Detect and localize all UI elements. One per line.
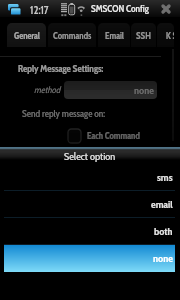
- staticText: none: [153, 252, 173, 265]
- button[interactable]: none: [4, 245, 175, 272]
- button[interactable]: General: [7, 23, 46, 47]
- button[interactable]: email: [4, 191, 175, 218]
- button[interactable]: both: [4, 218, 175, 245]
- staticText: Reply Message Settings:: [18, 63, 104, 75]
- staticText: none: [134, 84, 154, 97]
- button[interactable]: Task switcher: [3, 1, 21, 18]
- staticText: K S: [166, 30, 174, 41]
- staticText: General: [14, 30, 40, 41]
- button[interactable]: none: [64, 81, 157, 99]
- staticText: Commands: [53, 30, 92, 41]
- staticText: Select option: [64, 150, 116, 163]
- staticText: Send reply message on:: [22, 108, 106, 120]
- staticText: Email: [105, 30, 124, 41]
- button[interactable]: Close: [158, 1, 174, 17]
- staticText: both: [154, 225, 173, 238]
- button[interactable]: Each Command: [68, 128, 140, 143]
- staticText: method: [34, 84, 61, 95]
- button[interactable]: Commands: [48, 23, 96, 47]
- staticText: SMSCON Config: [91, 3, 149, 15]
- button[interactable]: Email: [98, 23, 130, 47]
- staticText: sms: [157, 171, 173, 184]
- staticText: Each Command: [87, 130, 140, 141]
- staticText: email: [151, 198, 173, 211]
- button[interactable]: K S: [157, 23, 174, 47]
- button[interactable]: sms: [4, 164, 175, 191]
- staticText: SSH: [136, 30, 151, 41]
- button[interactable]: SSH: [131, 23, 156, 47]
- staticText: 12:17: [30, 3, 49, 16]
